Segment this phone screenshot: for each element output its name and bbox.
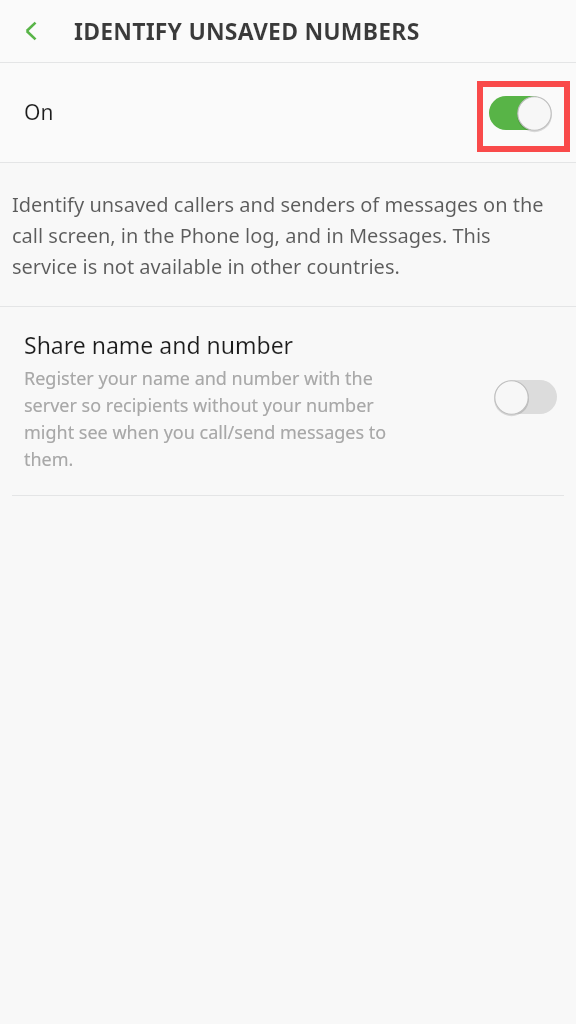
button[interactable]: On: [0, 63, 576, 162]
staticText: Identify unsaved callers and senders of …: [12, 191, 558, 280]
staticText: Share name and number: [24, 329, 294, 360]
button[interactable]: Toggle off: [496, 378, 558, 416]
button[interactable]: Toggle on: [488, 94, 550, 132]
staticText: Register your name and number with the s…: [24, 366, 424, 471]
button[interactable]: Navigate up: [6, 5, 58, 57]
staticText: On: [24, 98, 54, 127]
staticText: IDENTIFY UNSAVED NUMBERS: [74, 15, 420, 46]
button[interactable]: Share name and number: [0, 307, 576, 495]
